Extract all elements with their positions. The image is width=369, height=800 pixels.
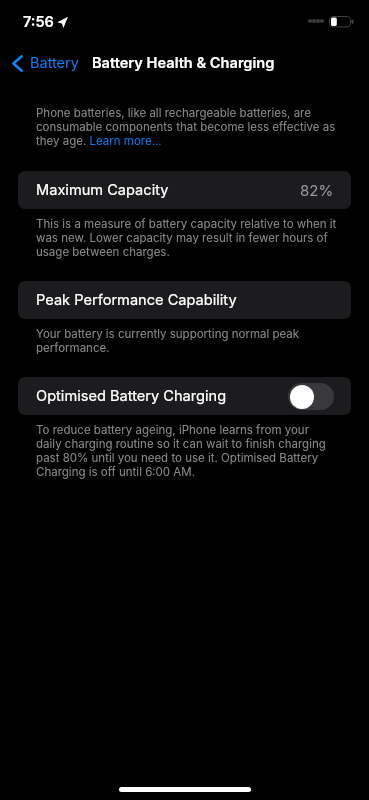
button[interactable]: Optimised Battery Charging toggle [288,383,334,410]
staticText: Your battery is currently supporting nor… [36,327,337,355]
staticText: This is a measure of battery capacity re… [36,217,337,259]
staticText: Peak Performance Capability [36,291,237,309]
staticText: To reduce battery ageing, iPhone learns … [36,423,337,479]
button[interactable]: Peak Performance Capability [18,281,351,319]
staticText: Battery Health & Charging [92,54,275,72]
staticText: 82% [300,181,334,199]
button[interactable]: Back to Battery [7,51,85,75]
staticText: Battery [30,54,79,72]
button[interactable]: Maximum Capacity [18,171,351,209]
staticText: 7:56 [23,13,54,31]
staticText: Phone batteries, like all rechargeable b… [36,106,337,148]
staticText: Optimised Battery Charging [36,387,227,405]
button[interactable]: Learn more about battery health [89,138,162,151]
button[interactable]: Optimised Battery Charging [18,377,351,415]
staticText: Maximum Capacity [36,181,169,199]
